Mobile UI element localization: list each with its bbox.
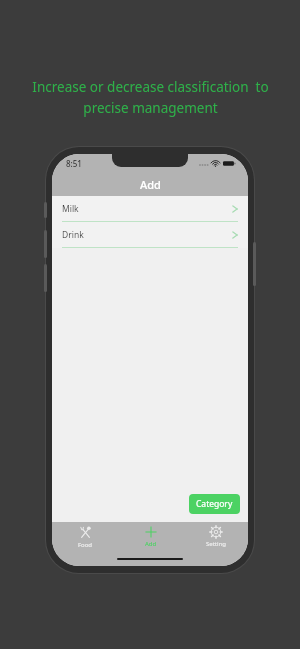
staticText: Add [145, 540, 157, 548]
button[interactable]: Add [118, 522, 183, 552]
other: Food [79, 526, 92, 539]
staticText: Milk [62, 203, 79, 215]
button[interactable]: Category [189, 494, 240, 514]
staticText: precise management [83, 99, 218, 117]
staticText: Increase or decrease classification to [32, 78, 269, 96]
button[interactable]: Drink [52, 222, 248, 248]
button[interactable]: Setting [183, 522, 248, 552]
button[interactable]: Food [52, 522, 118, 552]
staticText: Add [140, 177, 161, 192]
other: Setting [210, 526, 222, 538]
staticText: Category [196, 498, 233, 510]
staticText: Drink [62, 229, 84, 241]
staticText: Food [78, 541, 93, 549]
staticText: Setting [206, 540, 226, 548]
other: Add [145, 526, 157, 538]
button[interactable]: Milk [52, 196, 248, 222]
staticText: 8:51 [66, 158, 82, 169]
